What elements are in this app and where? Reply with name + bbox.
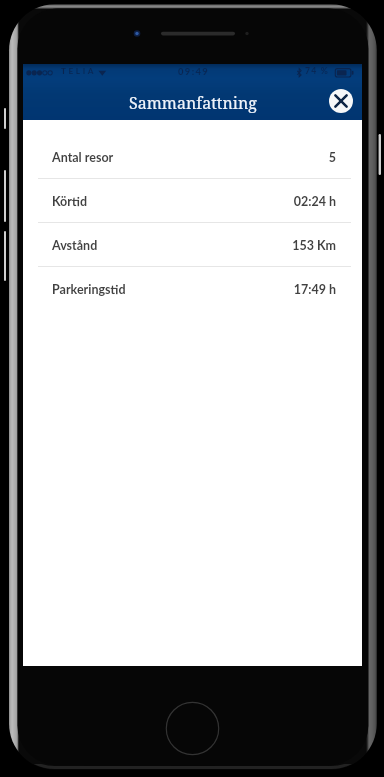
button[interactable]: Parkeringstid xyxy=(23,267,362,310)
staticText: Parkeringstid xyxy=(52,282,126,297)
staticText: 153 Km xyxy=(292,238,336,253)
staticText: 09:49 xyxy=(178,66,210,77)
staticText: TELIA xyxy=(61,66,96,76)
staticText: 74 % xyxy=(305,66,329,76)
button[interactable]: Stäng xyxy=(329,89,353,113)
staticText: Körtid xyxy=(52,194,88,209)
staticText: Sammanfattning xyxy=(129,92,257,114)
button[interactable]: Körtid xyxy=(23,179,362,222)
button[interactable]: Avstånd xyxy=(23,223,362,266)
staticText: 17:49 h xyxy=(293,282,336,297)
staticText: 5 xyxy=(328,150,336,165)
staticText: Antal resor xyxy=(52,150,114,165)
staticText: 02:24 h xyxy=(293,194,336,209)
button[interactable]: Antal resor xyxy=(23,134,362,178)
staticText: Avstånd xyxy=(52,238,98,253)
